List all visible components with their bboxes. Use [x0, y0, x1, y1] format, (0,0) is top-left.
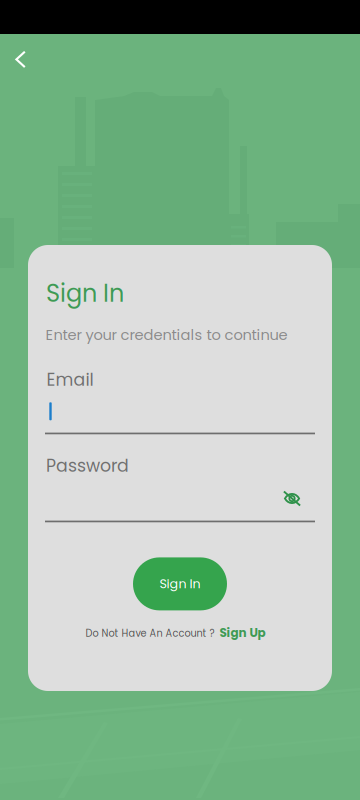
button[interactable]: Show password	[275, 483, 309, 513]
button[interactable]: Back	[0, 39, 40, 79]
button[interactable]: Sign In	[133, 557, 227, 610]
button[interactable]: Sign Up	[219, 624, 265, 641]
staticText: Do Not Have An Account ?	[85, 626, 214, 640]
staticText: Sign In	[46, 276, 124, 310]
staticText: Sign In	[159, 575, 200, 593]
staticText: Enter your credentials to continue	[45, 324, 287, 345]
staticText: Password	[46, 453, 129, 478]
staticText: Sign Up	[219, 624, 265, 641]
staticText: Email	[46, 367, 93, 392]
